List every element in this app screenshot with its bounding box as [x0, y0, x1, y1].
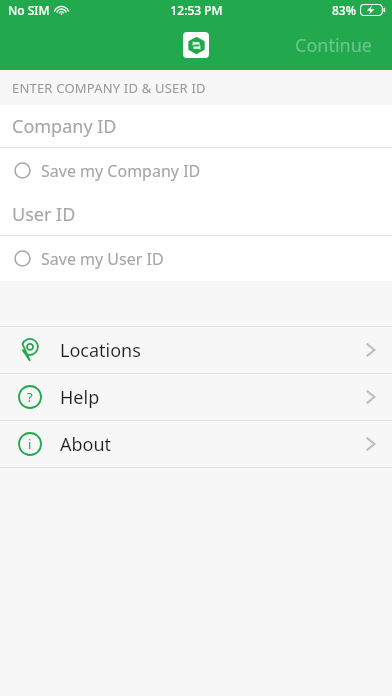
- staticText: ?: [27, 388, 33, 406]
- staticText: 83%: [332, 2, 356, 18]
- staticText: Locations: [60, 338, 141, 363]
- button[interactable]: i: [0, 421, 392, 467]
- staticText: Continue: [295, 33, 372, 58]
- button[interactable]: User ID: [0, 193, 392, 235]
- button[interactable]: Locations: [0, 327, 392, 373]
- staticText: About: [60, 432, 112, 457]
- button[interactable]: Save my User ID: [0, 236, 392, 281]
- staticText: Save my User ID: [41, 248, 164, 270]
- staticText: User ID: [12, 202, 76, 227]
- staticText: Help: [60, 385, 100, 410]
- staticText: 12:53 PM: [170, 2, 223, 18]
- button[interactable]: App logo: [183, 32, 209, 58]
- staticText: Save my Company ID: [41, 160, 201, 182]
- staticText: ENTER COMPANY ID & USER ID: [12, 79, 206, 97]
- staticText: Company ID: [12, 114, 117, 139]
- button[interactable]: Save my Company ID: [0, 148, 392, 193]
- button[interactable]: Continue: [274, 20, 392, 70]
- button[interactable]: ?: [0, 374, 392, 420]
- button[interactable]: Company ID: [0, 105, 392, 147]
- staticText: i: [28, 435, 32, 453]
- staticText: No SIM: [8, 2, 50, 18]
